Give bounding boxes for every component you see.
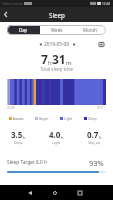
staticText: Deep (14, 140, 23, 145)
staticText: 3.5 (11, 129, 23, 140)
staticText: 0.7 (87, 129, 99, 140)
staticText: Month (83, 27, 97, 33)
staticText: Week (51, 27, 63, 33)
staticText: Sleep Target 8.0 h (7, 159, 48, 166)
staticText: h (48, 59, 52, 67)
button[interactable]: Home (48, 186, 62, 200)
staticText: China Unicom (2, 2, 23, 6)
staticText: h (99, 135, 102, 140)
button[interactable]: Month (73, 25, 106, 35)
staticText: Sleep (49, 11, 65, 19)
staticText: Awake (13, 116, 24, 121)
staticText: m (66, 59, 72, 67)
staticText: 31 (52, 51, 66, 67)
staticText: 93% (89, 158, 104, 166)
button[interactable]: Back (0, 7, 11, 22)
staticText: h (23, 135, 26, 140)
button[interactable]: Recents (73, 186, 87, 200)
staticText: Begin (39, 116, 49, 121)
staticText: 2019-05-09 (44, 41, 70, 48)
button[interactable]: Previous day (36, 40, 44, 48)
staticText: 12:40 (102, 2, 111, 6)
staticText: 23:40 (7, 106, 16, 110)
staticText: Light (52, 140, 61, 145)
button[interactable]: Calendar (98, 41, 105, 48)
staticText: 07:11 (97, 106, 106, 110)
staticText: Deep (88, 116, 97, 121)
staticText: Light (64, 116, 73, 121)
staticText: 4.0 (49, 129, 61, 140)
staticText: h (61, 135, 64, 140)
button[interactable]: Next day (70, 40, 78, 48)
staticText: 7 (41, 51, 48, 67)
staticText: Stay up (88, 140, 101, 145)
button[interactable]: Week (40, 25, 73, 35)
staticText: Total sleep time (0, 66, 113, 72)
button[interactable]: Back (23, 186, 37, 200)
staticText: Day (19, 27, 28, 33)
button[interactable]: Day (7, 25, 40, 35)
